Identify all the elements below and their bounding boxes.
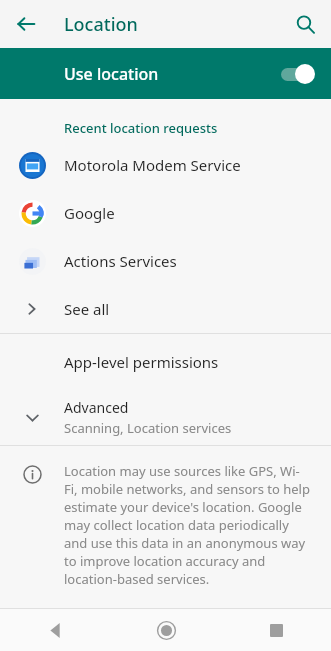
staticText: Motorola Modem Service: [64, 155, 241, 175]
button[interactable]: Use location: [0, 48, 331, 99]
staticText: Advanced: [64, 398, 129, 417]
staticText: Recent location requests: [64, 119, 218, 137]
staticText: Location: [64, 12, 138, 37]
staticText: Google: [64, 203, 115, 223]
button[interactable]: Google: [0, 189, 331, 237]
staticText: Location may use sources like GPS, Wi-Fi…: [64, 462, 313, 588]
button[interactable]: See all: [0, 285, 331, 333]
staticText: App-level permissions: [64, 352, 219, 372]
button[interactable]: Recent apps: [221, 609, 331, 651]
button[interactable]: Back: [0, 609, 111, 651]
staticText: Scanning, Location services: [64, 419, 232, 437]
button[interactable]: App-level permissions: [0, 334, 331, 389]
button[interactable]: Search: [287, 6, 323, 42]
staticText: Actions Services: [64, 251, 177, 271]
button[interactable]: Home: [111, 609, 221, 651]
button[interactable]: Motorola Modem Service: [0, 141, 331, 189]
button[interactable]: Advanced: [0, 389, 331, 445]
staticText: See all: [64, 299, 110, 319]
button[interactable]: Back: [8, 6, 44, 42]
button[interactable]: Actions Services: [0, 237, 331, 285]
staticText: Use location: [64, 63, 277, 85]
